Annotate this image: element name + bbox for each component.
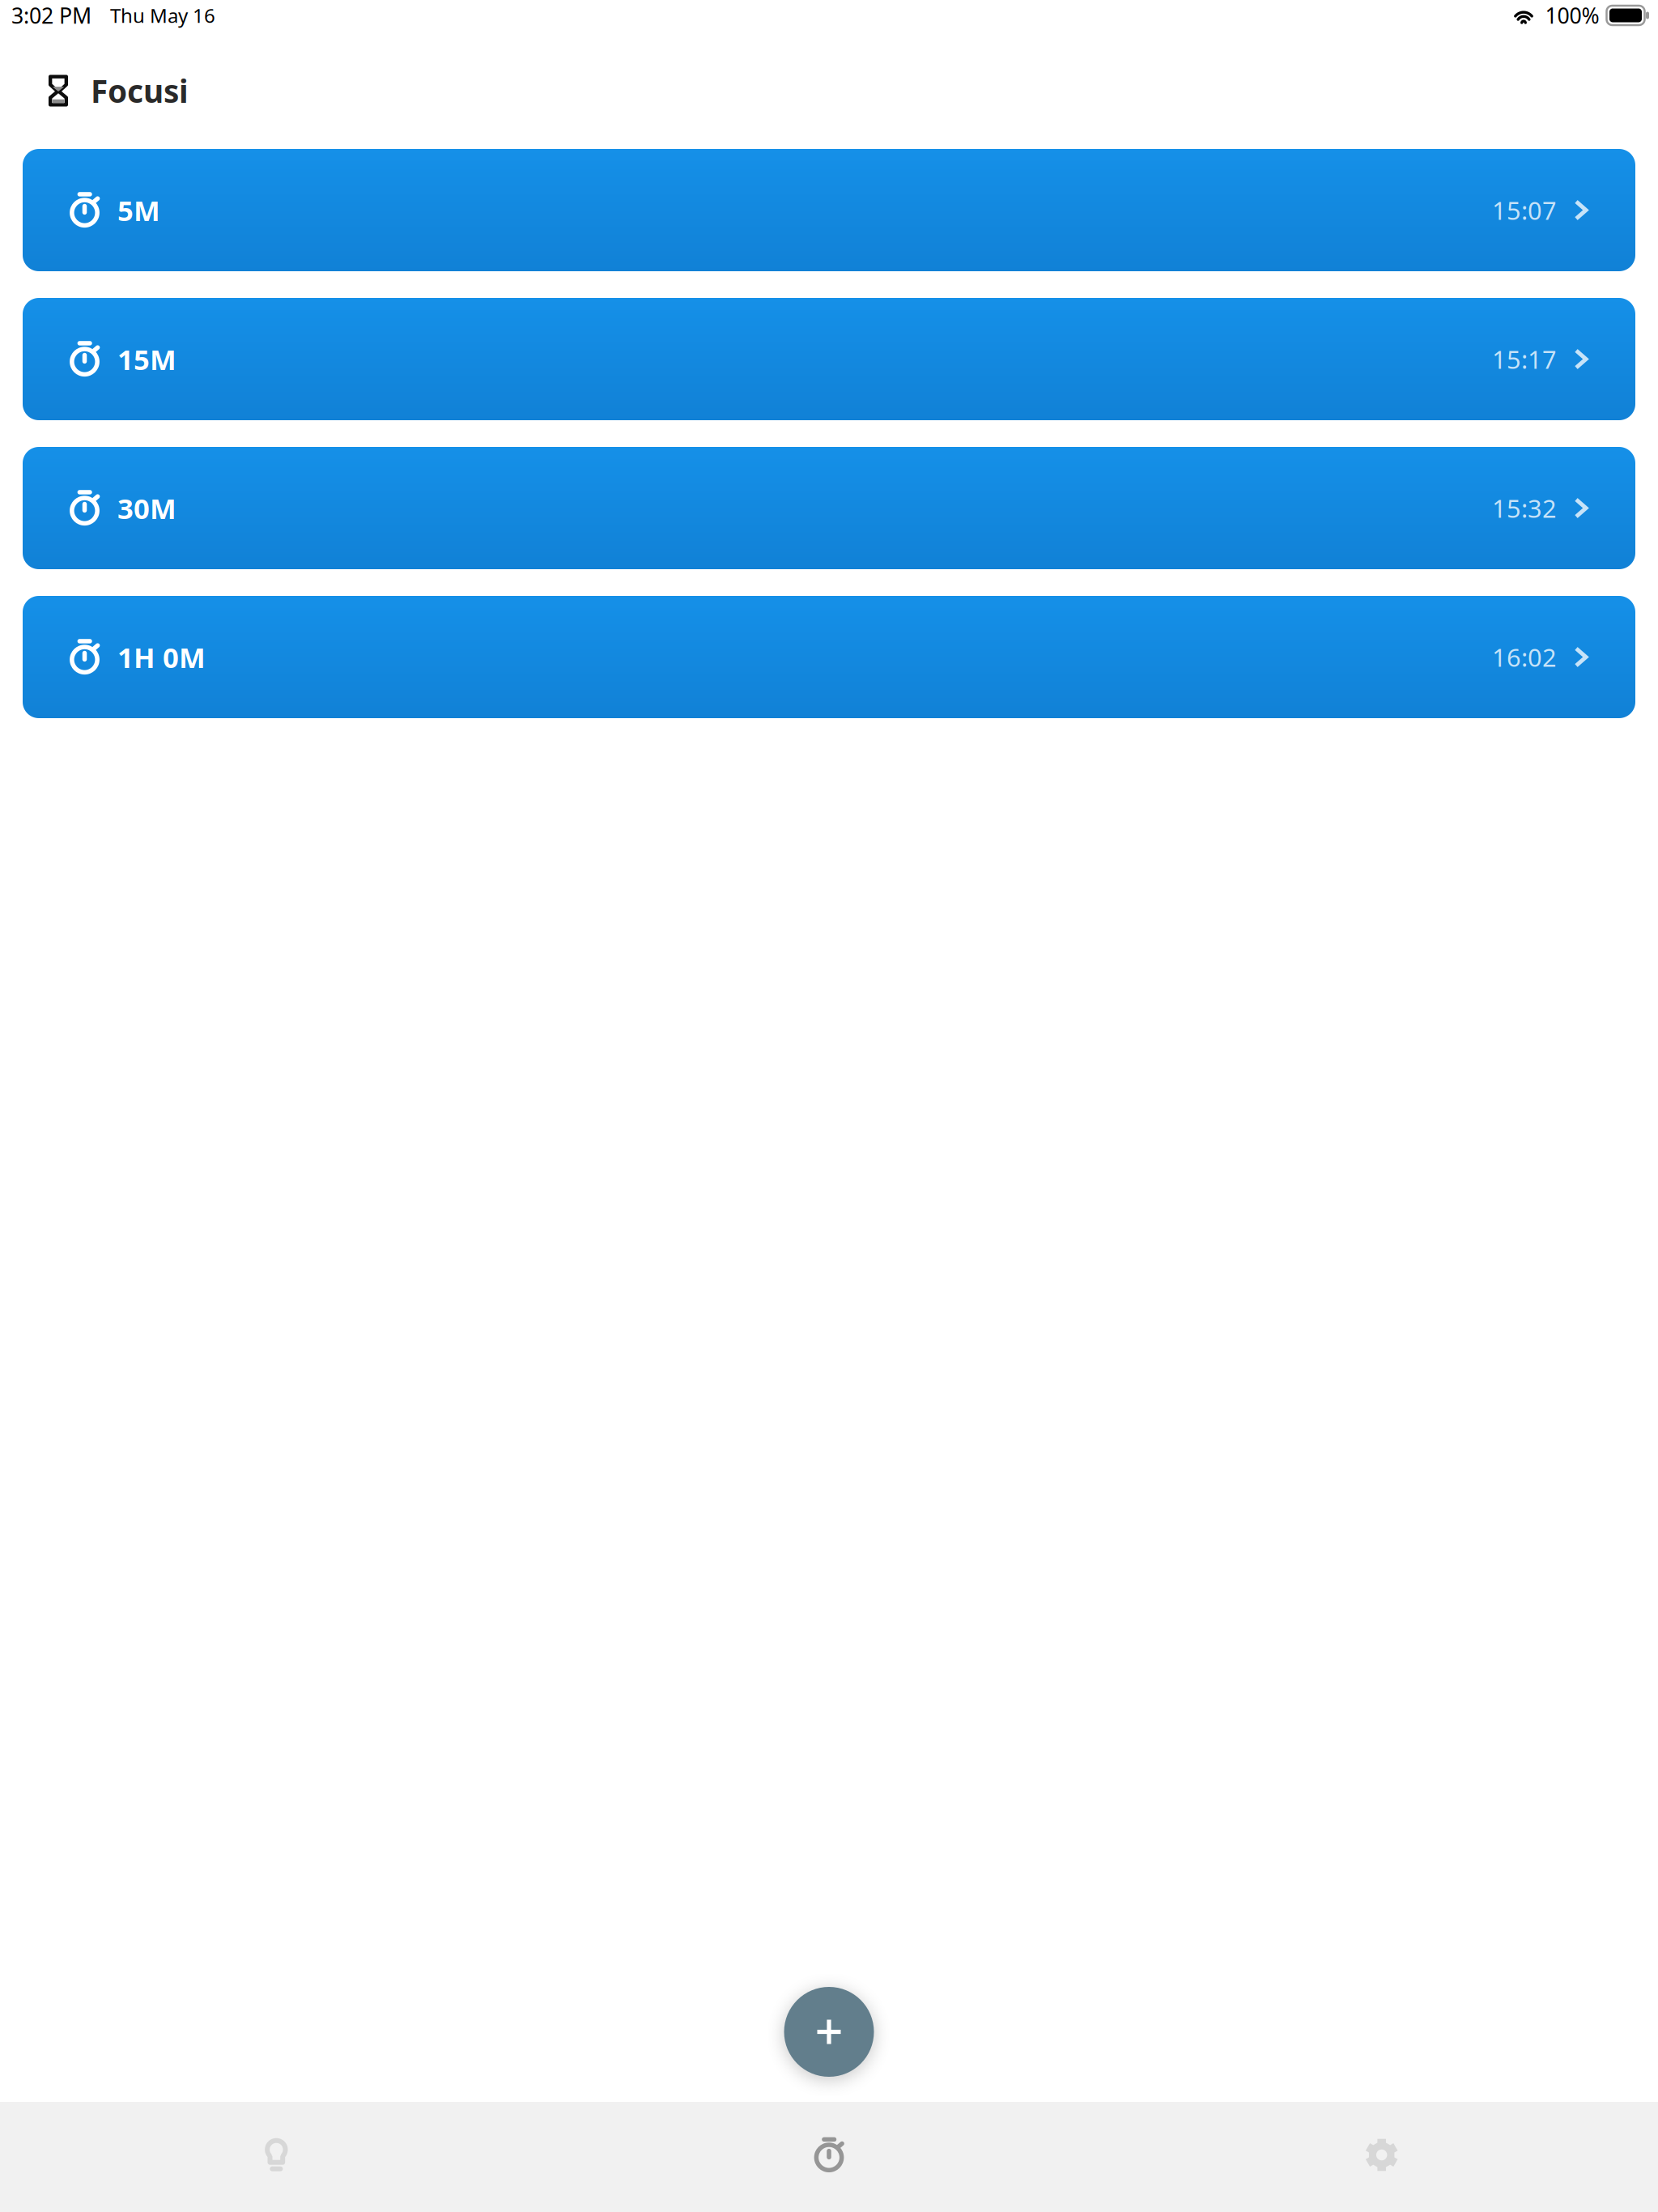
button[interactable]: Timers [553, 2102, 1105, 2212]
staticText: Thu May 16 [110, 3, 215, 28]
staticText: 100% [1545, 1, 1599, 30]
button[interactable]: Add timer [784, 1987, 874, 2077]
staticText: 15:32 [1492, 492, 1557, 524]
staticText: 3:02 PM [11, 1, 91, 30]
button[interactable]: 1H 0M [23, 596, 1635, 718]
staticText: 15:07 [1492, 194, 1557, 227]
staticText: 16:02 [1492, 641, 1557, 673]
staticText: 30M [117, 489, 176, 527]
staticText: 15:17 [1492, 343, 1557, 376]
button[interactable]: 30M [23, 447, 1635, 569]
button[interactable]: 5M [23, 149, 1635, 271]
staticText: 15M [117, 340, 176, 378]
staticText: 1H 0M [117, 638, 206, 676]
button[interactable]: 15M [23, 298, 1635, 420]
staticText: Focusi [91, 70, 189, 111]
staticText: 5M [117, 191, 160, 229]
